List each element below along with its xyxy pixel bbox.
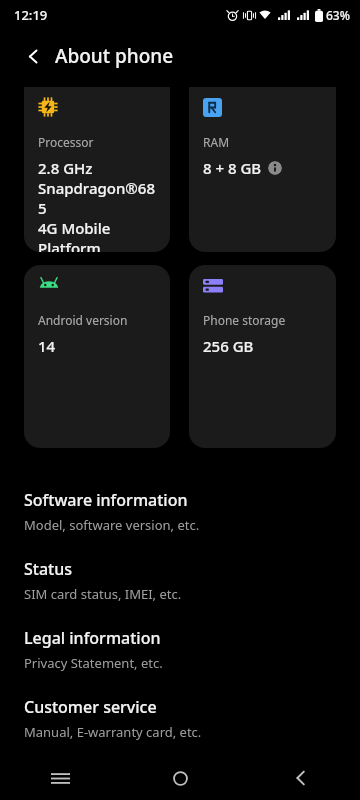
button[interactable]: Android version: [24, 265, 170, 448]
button[interactable]: Recent apps: [0, 756, 120, 800]
staticText: Phone storage: [203, 312, 286, 328]
staticText: Android version: [38, 312, 128, 328]
button[interactable]: Customer service: [0, 685, 360, 754]
button[interactable]: RAM: [189, 87, 336, 252]
staticText: RAM: [203, 134, 230, 150]
staticText: Customer service: [24, 696, 157, 718]
button[interactable]: Back: [240, 756, 360, 800]
staticText: Status: [24, 558, 73, 580]
staticText: 14: [38, 336, 56, 356]
button[interactable]: Legal information: [0, 616, 360, 685]
button[interactable]: Software information: [0, 478, 360, 547]
button[interactable]: Status: [0, 547, 360, 616]
staticText: 256 GB: [203, 336, 254, 356]
staticText: About phone: [55, 43, 174, 69]
staticText: Manual, E-warranty card, etc.: [24, 723, 202, 741]
button[interactable]: RAM info: [268, 161, 282, 175]
staticText: Privacy Statement, etc.: [24, 654, 163, 672]
staticText: 8 + 8 GB: [203, 158, 262, 178]
staticText: 63%: [326, 7, 350, 23]
staticText: Software information: [24, 489, 188, 511]
button[interactable]: Back: [14, 37, 52, 75]
staticText: 2.8 GHz Snapdragon®685 4G Mobile Platfor…: [38, 158, 160, 252]
staticText: Legal information: [24, 627, 161, 649]
button[interactable]: Processor: [24, 87, 170, 252]
staticText: Model, software version, etc.: [24, 516, 200, 534]
staticText: Processor: [38, 134, 94, 150]
staticText: 12:19: [14, 6, 48, 24]
staticText: SIM card status, IMEI, etc.: [24, 585, 182, 603]
button[interactable]: Phone storage: [189, 265, 336, 448]
button[interactable]: Home: [120, 756, 240, 800]
